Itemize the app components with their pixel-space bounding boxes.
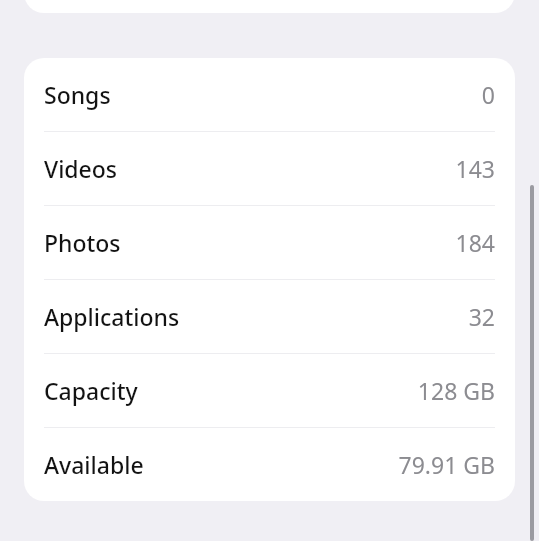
staticText: 128 GB: [417, 375, 495, 406]
staticText: Available: [44, 449, 144, 480]
staticText: 32: [468, 301, 495, 332]
button[interactable]: Applications: [24, 280, 515, 353]
button[interactable]: Songs: [24, 58, 515, 131]
button[interactable]: Capacity: [24, 354, 515, 427]
button[interactable]: Available: [24, 428, 515, 501]
button[interactable]: Photos: [24, 206, 515, 279]
staticText: Capacity: [44, 375, 138, 406]
staticText: Photos: [44, 227, 121, 258]
staticText: 143: [455, 153, 495, 184]
button[interactable]: Videos: [24, 132, 515, 205]
staticText: Videos: [44, 153, 118, 184]
staticText: Songs: [44, 79, 111, 110]
staticText: 0: [481, 79, 495, 110]
staticText: Applications: [44, 301, 180, 332]
staticText: 79.91 GB: [398, 449, 495, 480]
staticText: 184: [455, 227, 495, 258]
